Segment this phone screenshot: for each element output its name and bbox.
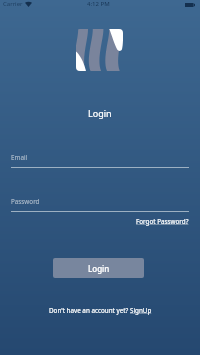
staticText: Email [11, 153, 28, 162]
staticText: 4:12 PM [87, 0, 110, 8]
staticText: Login [88, 263, 110, 274]
button[interactable]: Login [53, 258, 144, 278]
staticText: Don't have an account yet? [49, 306, 130, 315]
button[interactable]: Forgot Password? [136, 217, 189, 226]
button[interactable]: SignUp [130, 306, 152, 315]
staticText: Carrier [3, 0, 23, 8]
staticText: Password [11, 197, 40, 206]
staticText: Login [88, 107, 112, 119]
staticText: SignUp [130, 306, 152, 315]
staticText: Forgot Password? [136, 217, 189, 226]
